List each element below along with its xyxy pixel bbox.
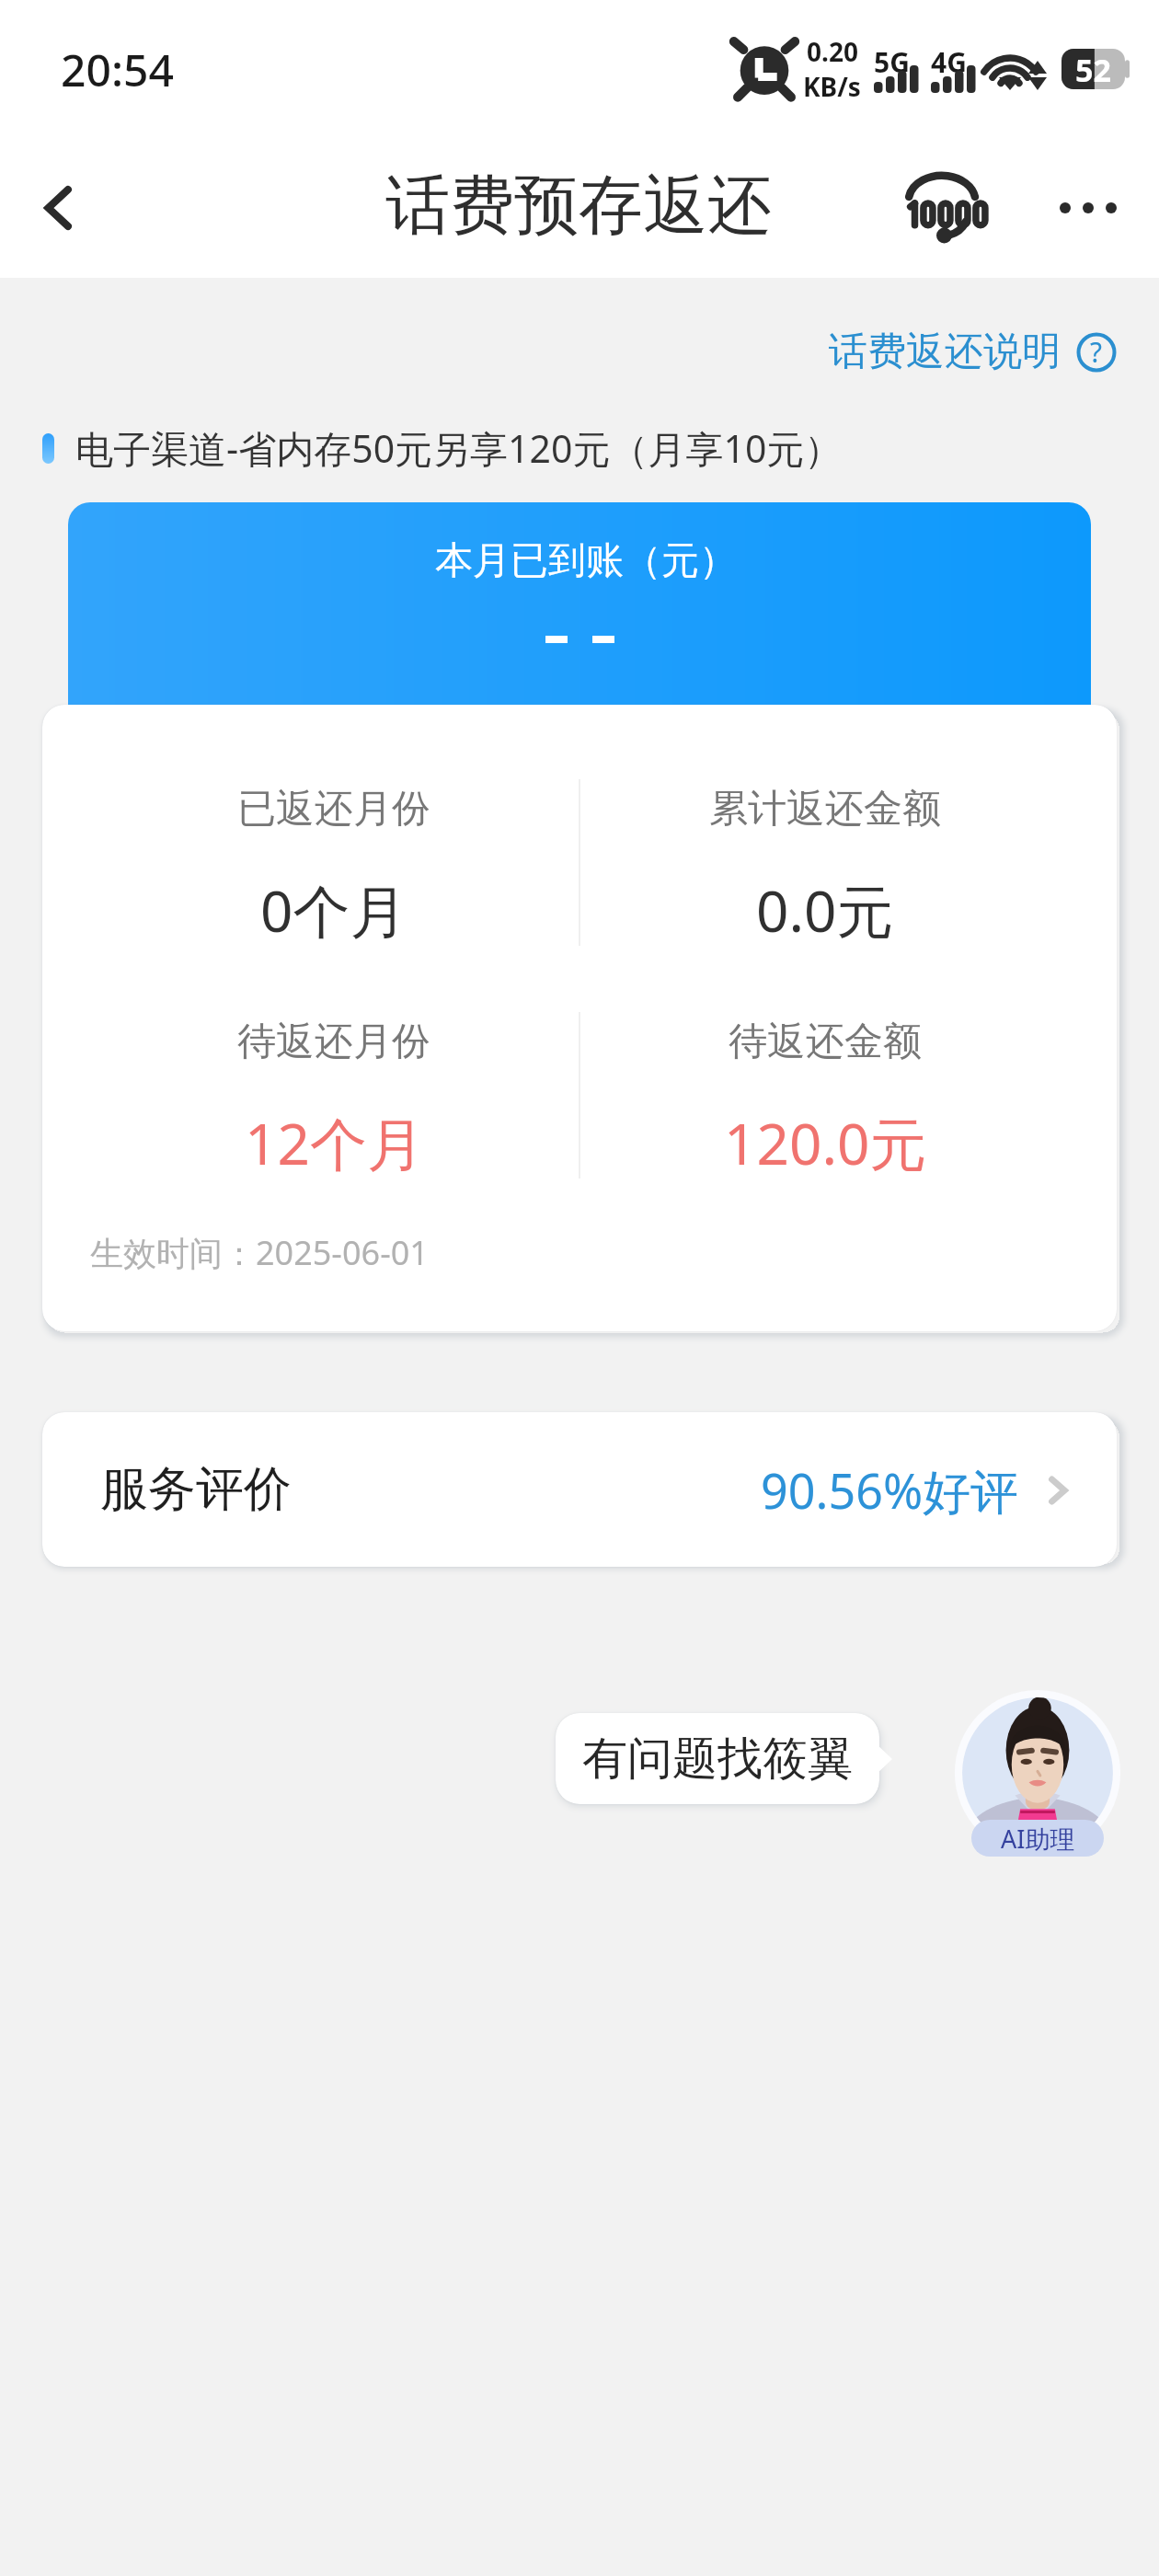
staticText: KB/s — [803, 69, 861, 104]
staticText: AI助理 — [1001, 1822, 1075, 1856]
button[interactable]: Back — [0, 138, 118, 278]
button[interactable]: More options — [1016, 138, 1159, 278]
button[interactable]: AI assistant — [954, 1689, 1121, 1857]
staticText: 20:54 — [61, 40, 174, 99]
staticText: 0.20 — [807, 34, 858, 69]
staticText: 0个月 — [260, 871, 407, 949]
staticText: ? — [1090, 333, 1103, 371]
staticText: 生效时间：2025-06-01 — [90, 1230, 429, 1275]
staticText: 120.0元 — [724, 1104, 927, 1182]
staticText: 90.56%好评 — [761, 1457, 1019, 1523]
button[interactable]: Customer service 10000 — [871, 138, 1016, 278]
staticText: 话费返还说明 — [829, 328, 1061, 376]
staticText: 4G — [931, 43, 967, 81]
staticText: 服务评价 — [100, 1459, 292, 1520]
staticText: 待返还金额 — [729, 1018, 922, 1066]
staticText: 52 — [1075, 49, 1111, 89]
staticText: 话费预存返还 — [385, 166, 772, 247]
staticText: 累计返还金额 — [709, 785, 941, 834]
staticText: 0.0元 — [756, 871, 894, 949]
staticText: 12个月 — [245, 1104, 424, 1182]
staticText: 电子渠道-省内存50元另享120元（月享10元） — [75, 422, 843, 474]
staticText: 5G — [874, 43, 910, 81]
staticText: 待返还月份 — [237, 1018, 430, 1066]
staticText: 已返还月份 — [237, 785, 430, 834]
staticText: 本月已到账（元） — [435, 537, 737, 585]
button[interactable]: 服务评价 — [42, 1412, 1117, 1567]
button[interactable]: 话费返还说明 — [829, 328, 1159, 376]
staticText: 有问题找筱翼 — [582, 1731, 853, 1788]
button[interactable]: 有问题找筱翼 — [556, 1713, 879, 1804]
